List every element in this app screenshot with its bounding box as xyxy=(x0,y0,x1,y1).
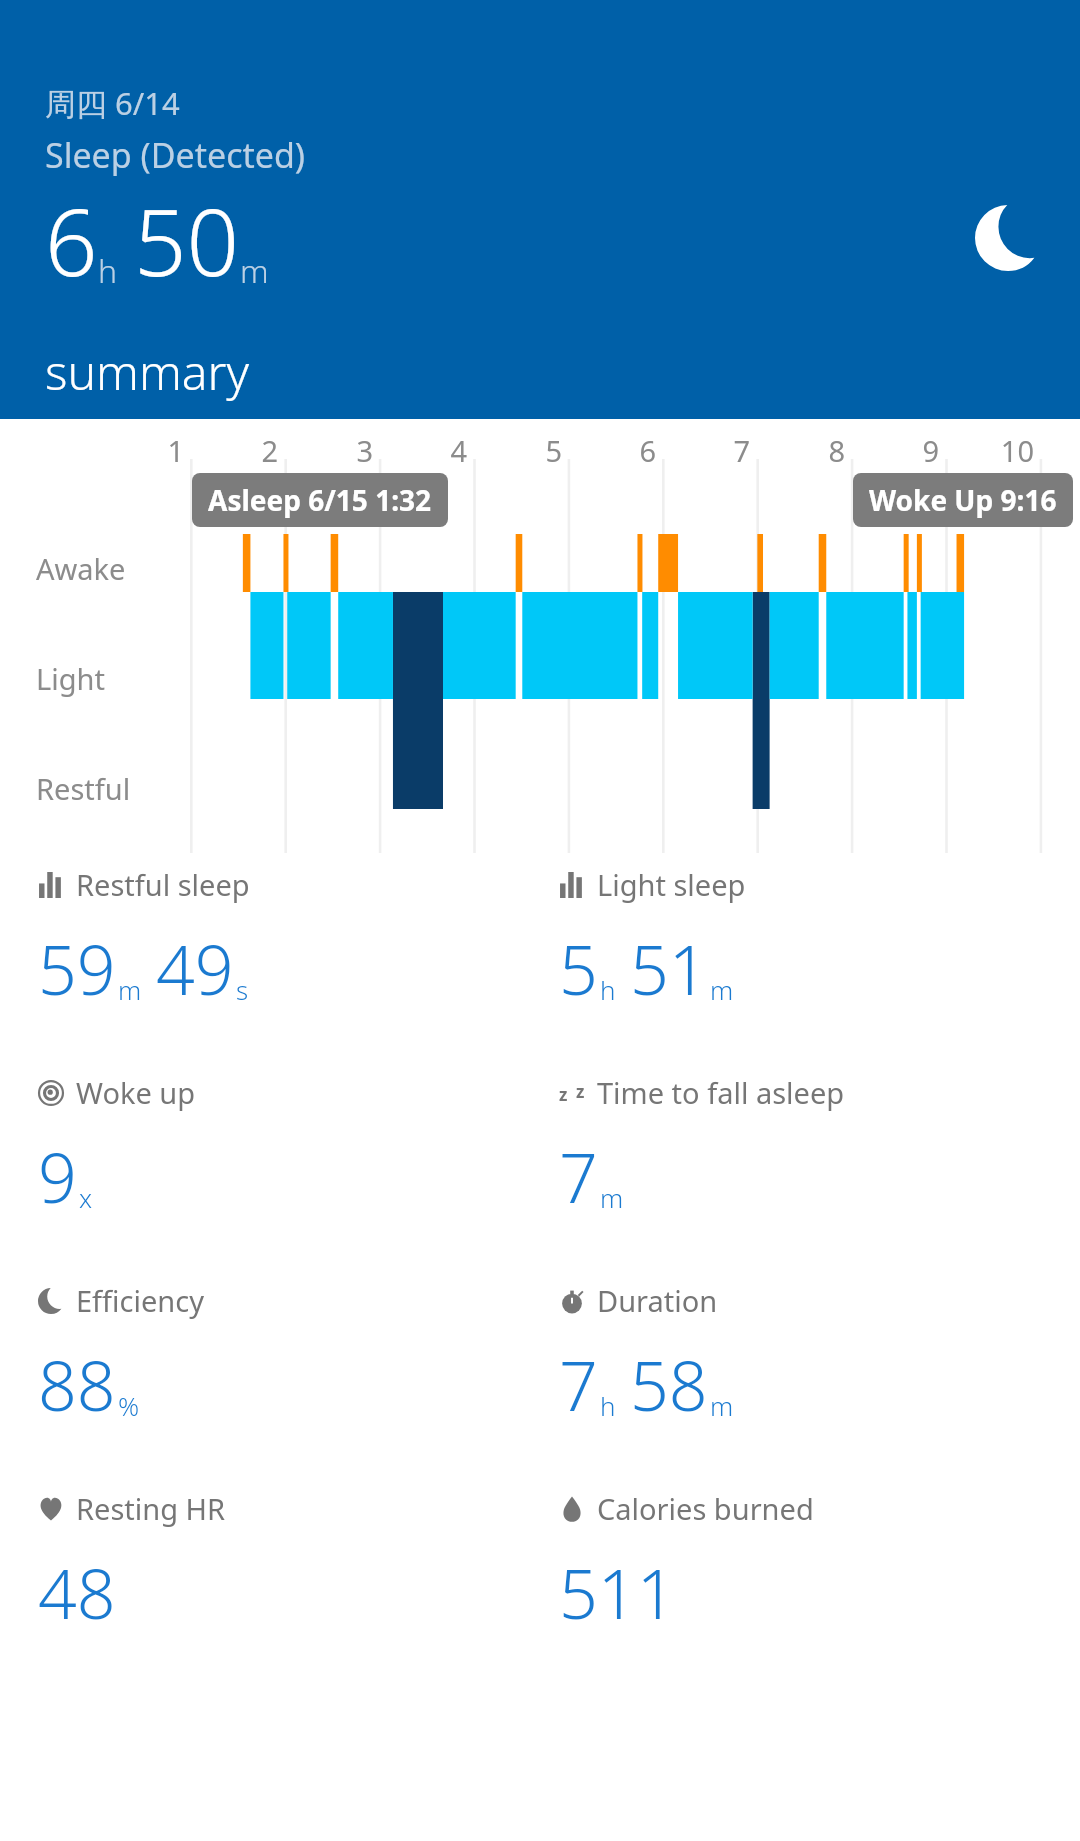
staticText: 88 xyxy=(38,1338,116,1431)
staticText: s xyxy=(236,972,249,1007)
staticText: Awake xyxy=(36,549,126,588)
button[interactable]: Woke up xyxy=(38,1073,196,1223)
staticText: 5 xyxy=(502,431,562,470)
staticText: 2 xyxy=(218,431,278,470)
staticText: z xyxy=(559,1083,568,1106)
staticText: 9 xyxy=(879,431,939,470)
staticText: 7 xyxy=(559,1338,598,1431)
button[interactable]: Restful sleep xyxy=(38,865,250,1015)
button[interactable]: Calories burned xyxy=(559,1489,814,1639)
staticText: m xyxy=(710,972,734,1007)
staticText: 周四 6/14 xyxy=(45,82,180,124)
other: Sleep xyxy=(975,205,1041,271)
staticText: 4 xyxy=(407,431,467,470)
staticText: m xyxy=(600,1180,624,1215)
staticText: 9 xyxy=(38,1130,77,1223)
button[interactable]: Resting HR xyxy=(38,1489,226,1639)
staticText: 48 xyxy=(38,1546,116,1639)
staticText: 3 xyxy=(313,431,373,470)
staticText: Woke Up 9:16 xyxy=(869,481,1057,519)
staticText: h xyxy=(600,1388,616,1423)
button[interactable]: summary xyxy=(45,339,249,404)
staticText: 8 xyxy=(785,431,845,470)
staticText: Asleep 6/15 1:32 xyxy=(208,481,432,519)
staticText: Time to fall asleep xyxy=(597,1073,845,1112)
staticText: % xyxy=(118,1388,140,1423)
staticText: 6 xyxy=(596,431,656,470)
button[interactable]: z xyxy=(559,1073,845,1223)
staticText: 6 xyxy=(45,178,98,303)
staticText: 50 xyxy=(134,178,240,303)
staticText: m xyxy=(240,249,269,293)
staticText: m xyxy=(118,972,142,1007)
button[interactable]: Woke Up 9:16 xyxy=(853,473,1073,527)
button[interactable]: Efficiency xyxy=(38,1281,204,1431)
staticText: z xyxy=(576,1080,585,1103)
staticText: Restful sleep xyxy=(76,865,250,904)
staticText: Efficiency xyxy=(76,1281,204,1320)
staticText: Calories burned xyxy=(597,1489,814,1528)
staticText: Resting HR xyxy=(76,1489,226,1528)
staticText: 10 xyxy=(974,431,1034,470)
staticText: 7 xyxy=(559,1130,598,1223)
staticText: 49 xyxy=(156,922,234,1015)
staticText: 5 xyxy=(559,922,598,1015)
staticText: 7 xyxy=(690,431,750,470)
staticText: Woke up xyxy=(76,1073,196,1112)
staticText: Light xyxy=(36,659,105,698)
button[interactable]: Asleep 6/15 1:32 xyxy=(192,473,448,527)
staticText: h xyxy=(600,972,616,1007)
staticText: 51 xyxy=(630,922,708,1015)
staticText: m xyxy=(710,1388,734,1423)
button[interactable]: Duration xyxy=(559,1281,734,1431)
staticText: x xyxy=(79,1180,93,1215)
staticText: Light sleep xyxy=(597,865,746,904)
staticText: 58 xyxy=(630,1338,708,1431)
staticText: 511 xyxy=(559,1546,676,1639)
staticText: Duration xyxy=(597,1281,718,1320)
staticText: Restful xyxy=(36,769,131,808)
staticText: 59 xyxy=(38,922,116,1015)
staticText: h xyxy=(98,249,118,293)
staticText: Sleep (Detected) xyxy=(45,132,306,178)
staticText: 1 xyxy=(124,431,184,470)
button[interactable]: Light sleep xyxy=(559,865,746,1015)
